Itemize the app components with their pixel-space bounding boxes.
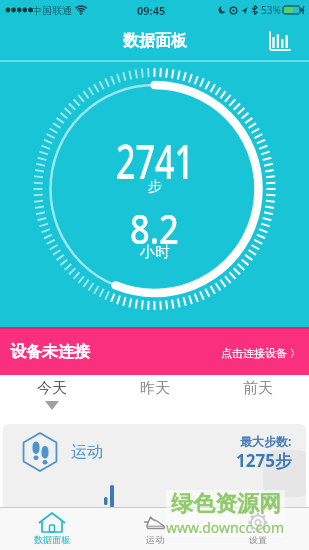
- staticText: 最大步数:: [240, 433, 292, 449]
- staticText: 前天: [243, 379, 273, 398]
- button[interactable]: [265, 26, 295, 56]
- staticText: 数据面板: [34, 534, 70, 545]
- staticText: 绿色资源网: [171, 490, 281, 518]
- staticText: 数据面板: [123, 31, 187, 51]
- staticText: 昨天: [140, 379, 170, 398]
- staticText: 1275步: [236, 449, 292, 472]
- staticText: 中国联通: [32, 4, 72, 17]
- button[interactable]: 今天: [0, 379, 103, 410]
- staticText: 步: [148, 178, 162, 196]
- button[interactable]: 运动: [103, 508, 206, 550]
- staticText: 设备未连接: [10, 342, 90, 362]
- staticText: 运动: [146, 534, 164, 545]
- button[interactable]: 设置: [206, 508, 309, 550]
- button[interactable]: 昨天: [103, 379, 206, 398]
- staticText: 点击连接设备 〉: [221, 345, 301, 360]
- button[interactable]: 设备未连接: [0, 327, 309, 375]
- button[interactable]: 数据面板: [0, 508, 103, 550]
- staticText: 运动: [71, 442, 103, 462]
- button[interactable]: 运动: [3, 424, 306, 480]
- staticText: 今天: [37, 379, 67, 398]
- staticText: 53%: [261, 3, 281, 17]
- staticText: 2741: [116, 128, 194, 193]
- staticText: 设置: [249, 534, 267, 545]
- staticText: 09:45: [137, 3, 166, 18]
- button[interactable]: 前天: [206, 379, 309, 398]
- staticText: www.downcc.com: [166, 518, 285, 537]
- staticText: 8.2: [130, 201, 179, 255]
- staticText: 小时: [140, 243, 170, 262]
